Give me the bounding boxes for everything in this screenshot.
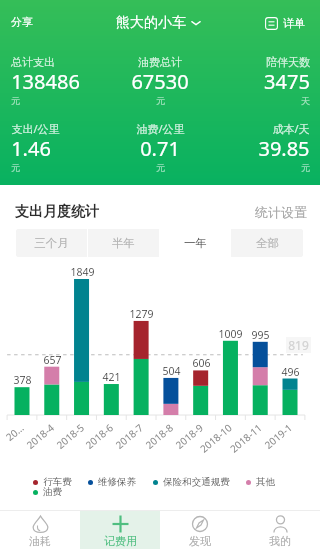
button[interactable]: 油耗 — [0, 511, 80, 549]
staticText: 全部 — [256, 236, 279, 250]
staticText: 1009 — [218, 327, 243, 341]
staticText: 657 — [43, 353, 62, 367]
staticText: 1.46 — [11, 135, 51, 162]
button[interactable]: 熊大的小车 — [114, 12, 203, 34]
staticText: 67530 — [131, 68, 189, 95]
staticText: 504 — [162, 364, 181, 378]
button[interactable]: 记费用 — [80, 511, 160, 549]
button[interactable]: 全部 — [231, 229, 303, 257]
staticText: 2018-9 — [172, 420, 205, 451]
other: 油耗 — [33, 515, 48, 533]
staticText: 总计支出 — [11, 55, 55, 69]
staticText: 油费总计 — [138, 55, 182, 69]
staticText: 3475 — [264, 68, 310, 95]
staticText: 成本/天 — [272, 121, 310, 136]
staticText: 油费 — [43, 486, 62, 498]
staticText: 378 — [13, 373, 32, 387]
staticText: 陪伴天数 — [266, 55, 310, 69]
staticText: 元 — [156, 95, 165, 106]
button[interactable]: 我的 — [240, 511, 320, 549]
button[interactable]: 一年 — [159, 229, 231, 257]
staticText: 元 — [301, 162, 310, 173]
other: 我的 — [273, 515, 288, 533]
staticText: 2018-10 — [197, 420, 234, 455]
button[interactable]: 分享 — [5, 12, 39, 32]
staticText: 分享 — [11, 15, 33, 29]
staticText: 2018-8 — [142, 420, 175, 451]
staticText: 39.85 — [258, 135, 310, 162]
staticText: 1279 — [129, 307, 154, 321]
staticText: 0.71 — [140, 135, 180, 162]
staticText: 元 — [11, 95, 20, 106]
staticText: 行车费 — [43, 476, 72, 488]
staticText: 138486 — [11, 68, 80, 95]
staticText: 支出/公里 — [11, 121, 60, 136]
button[interactable]: 详单 — [263, 14, 307, 32]
staticText: 20… — [2, 420, 26, 443]
staticText: 一年 — [184, 236, 207, 250]
staticText: 油耗 — [29, 534, 51, 548]
staticText: 半年 — [112, 236, 135, 250]
staticText: 1849 — [70, 265, 95, 279]
staticText: 2018-11 — [227, 420, 264, 455]
staticText: 2019-1 — [261, 420, 294, 451]
other: 详单 — [265, 17, 278, 30]
staticText: 详单 — [283, 16, 305, 30]
button[interactable]: 半年 — [87, 229, 159, 257]
staticText: 发现 — [189, 534, 211, 548]
staticText: 三个月 — [34, 236, 69, 250]
staticText: 维修保养 — [98, 476, 136, 488]
staticText: 元 — [11, 162, 20, 173]
button[interactable]: 统计设置 — [255, 204, 307, 220]
staticText: 油费/公里 — [136, 121, 185, 136]
staticText: 2018-7 — [112, 420, 145, 451]
staticText: 熊大的小车 — [116, 14, 186, 32]
staticText: 我的 — [269, 534, 291, 548]
staticText: 2018-4 — [23, 420, 56, 451]
staticText: 记费用 — [104, 534, 137, 548]
staticText: 天 — [301, 95, 310, 106]
other: 记费用 — [112, 515, 129, 533]
staticText: 2018-5 — [53, 420, 86, 451]
staticText: 支出月度统计 — [15, 203, 99, 221]
staticText: 2018-6 — [82, 420, 115, 451]
button[interactable]: 三个月 — [16, 229, 87, 257]
staticText: 606 — [192, 356, 211, 370]
staticText: 元 — [156, 162, 165, 173]
staticText: 819 — [288, 337, 309, 353]
other: 发现 — [192, 515, 208, 533]
staticText: 496 — [281, 365, 300, 379]
staticText: 421 — [102, 370, 121, 384]
staticText: 统计设置 — [255, 204, 307, 220]
staticText: 保险和交通规费 — [163, 476, 230, 488]
staticText: 995 — [251, 328, 270, 342]
button[interactable]: 发现 — [160, 511, 240, 549]
staticText: 其他 — [256, 476, 275, 488]
